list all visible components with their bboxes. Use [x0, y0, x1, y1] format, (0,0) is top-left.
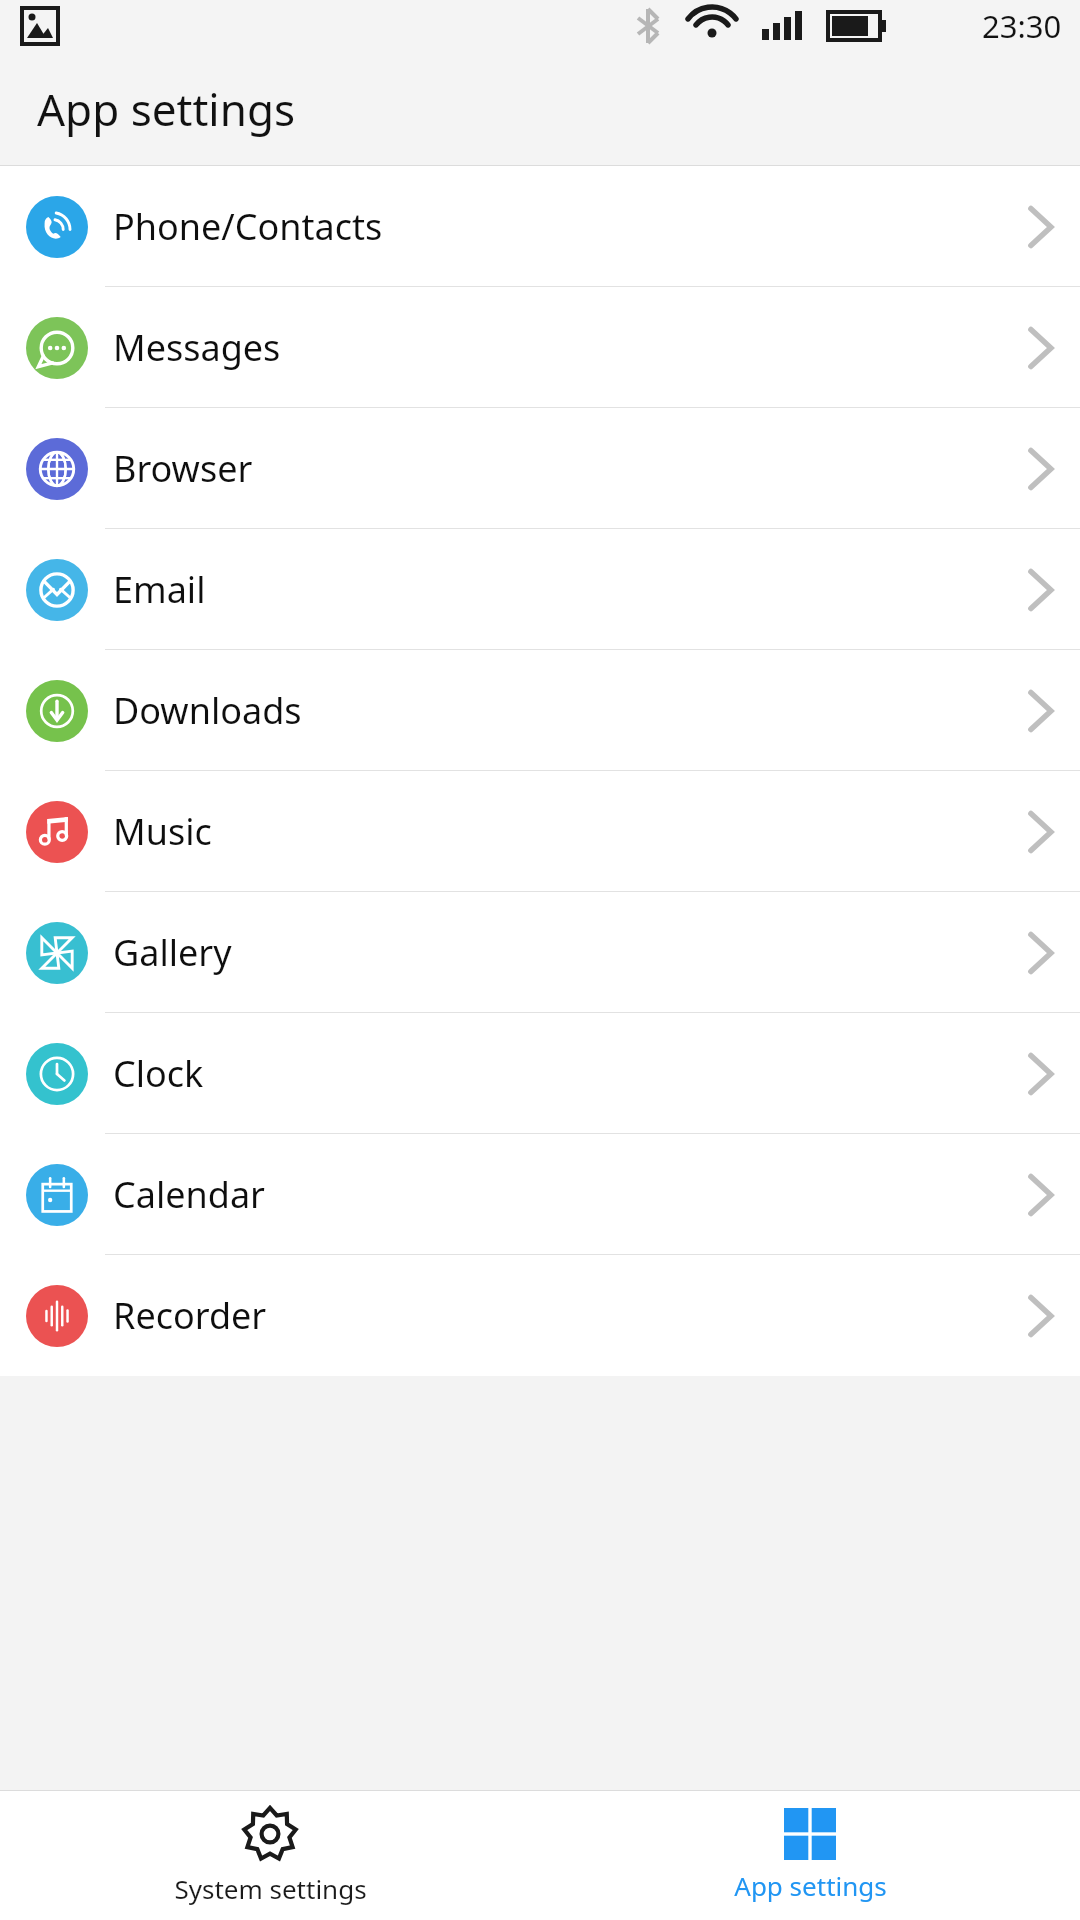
staticText: Music	[113, 807, 1000, 856]
staticText: App settings	[734, 1868, 887, 1903]
button[interactable]: Messages	[0, 287, 1080, 408]
button[interactable]: Music	[0, 771, 1080, 892]
button[interactable]: Calendar	[0, 1134, 1080, 1255]
staticText: 23:30	[982, 5, 1062, 47]
staticText: Recorder	[113, 1291, 1000, 1340]
staticText: System settings	[174, 1871, 367, 1906]
button[interactable]: Downloads	[0, 650, 1080, 771]
button[interactable]: Recorder	[0, 1255, 1080, 1376]
button[interactable]: Browser	[0, 408, 1080, 529]
button[interactable]: Clock	[0, 1013, 1080, 1134]
button[interactable]: Phone/Contacts	[0, 166, 1080, 287]
staticText: Phone/Contacts	[113, 202, 1000, 251]
button[interactable]: Email	[0, 529, 1080, 650]
staticText: Messages	[113, 323, 1000, 372]
staticText: Gallery	[113, 928, 1000, 977]
staticText: Downloads	[113, 686, 1000, 735]
button[interactable]: App settings	[540, 1791, 1080, 1920]
button[interactable]: System settings	[0, 1791, 540, 1920]
staticText: App settings	[37, 79, 296, 139]
button[interactable]: Gallery	[0, 892, 1080, 1013]
staticText: Calendar	[113, 1170, 1000, 1219]
staticText: Clock	[113, 1049, 1000, 1098]
staticText: Browser	[113, 444, 1000, 493]
staticText: Email	[113, 565, 1000, 614]
